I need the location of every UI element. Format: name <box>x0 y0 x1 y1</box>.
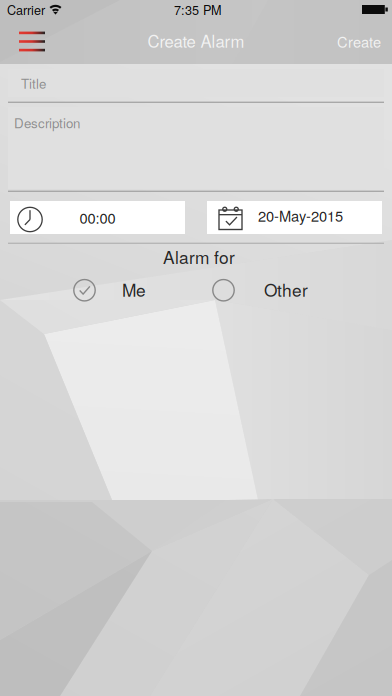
staticText: Create Alarm <box>147 29 244 52</box>
staticText: Description <box>14 113 80 132</box>
button[interactable]: Description <box>8 107 384 189</box>
button[interactable]: 00:00 <box>10 201 185 234</box>
staticText: 00:00 <box>79 207 115 228</box>
button[interactable]: Title <box>8 69 384 97</box>
staticText: 20-May-2015 <box>258 205 343 226</box>
staticText: Me <box>122 277 146 302</box>
button[interactable]: 20-May-2015 <box>207 201 382 234</box>
button[interactable]: Me <box>73 274 146 307</box>
button[interactable]: Other <box>212 274 308 307</box>
staticText: 7:35 PM <box>174 0 222 18</box>
button[interactable]: Menu <box>0 21 59 62</box>
staticText: Carrier <box>7 0 45 18</box>
staticText: Create <box>337 31 381 52</box>
staticText: Alarm for <box>163 244 235 269</box>
button[interactable]: Create <box>323 19 392 64</box>
staticText: Other <box>264 277 308 302</box>
staticText: Title <box>21 73 46 93</box>
